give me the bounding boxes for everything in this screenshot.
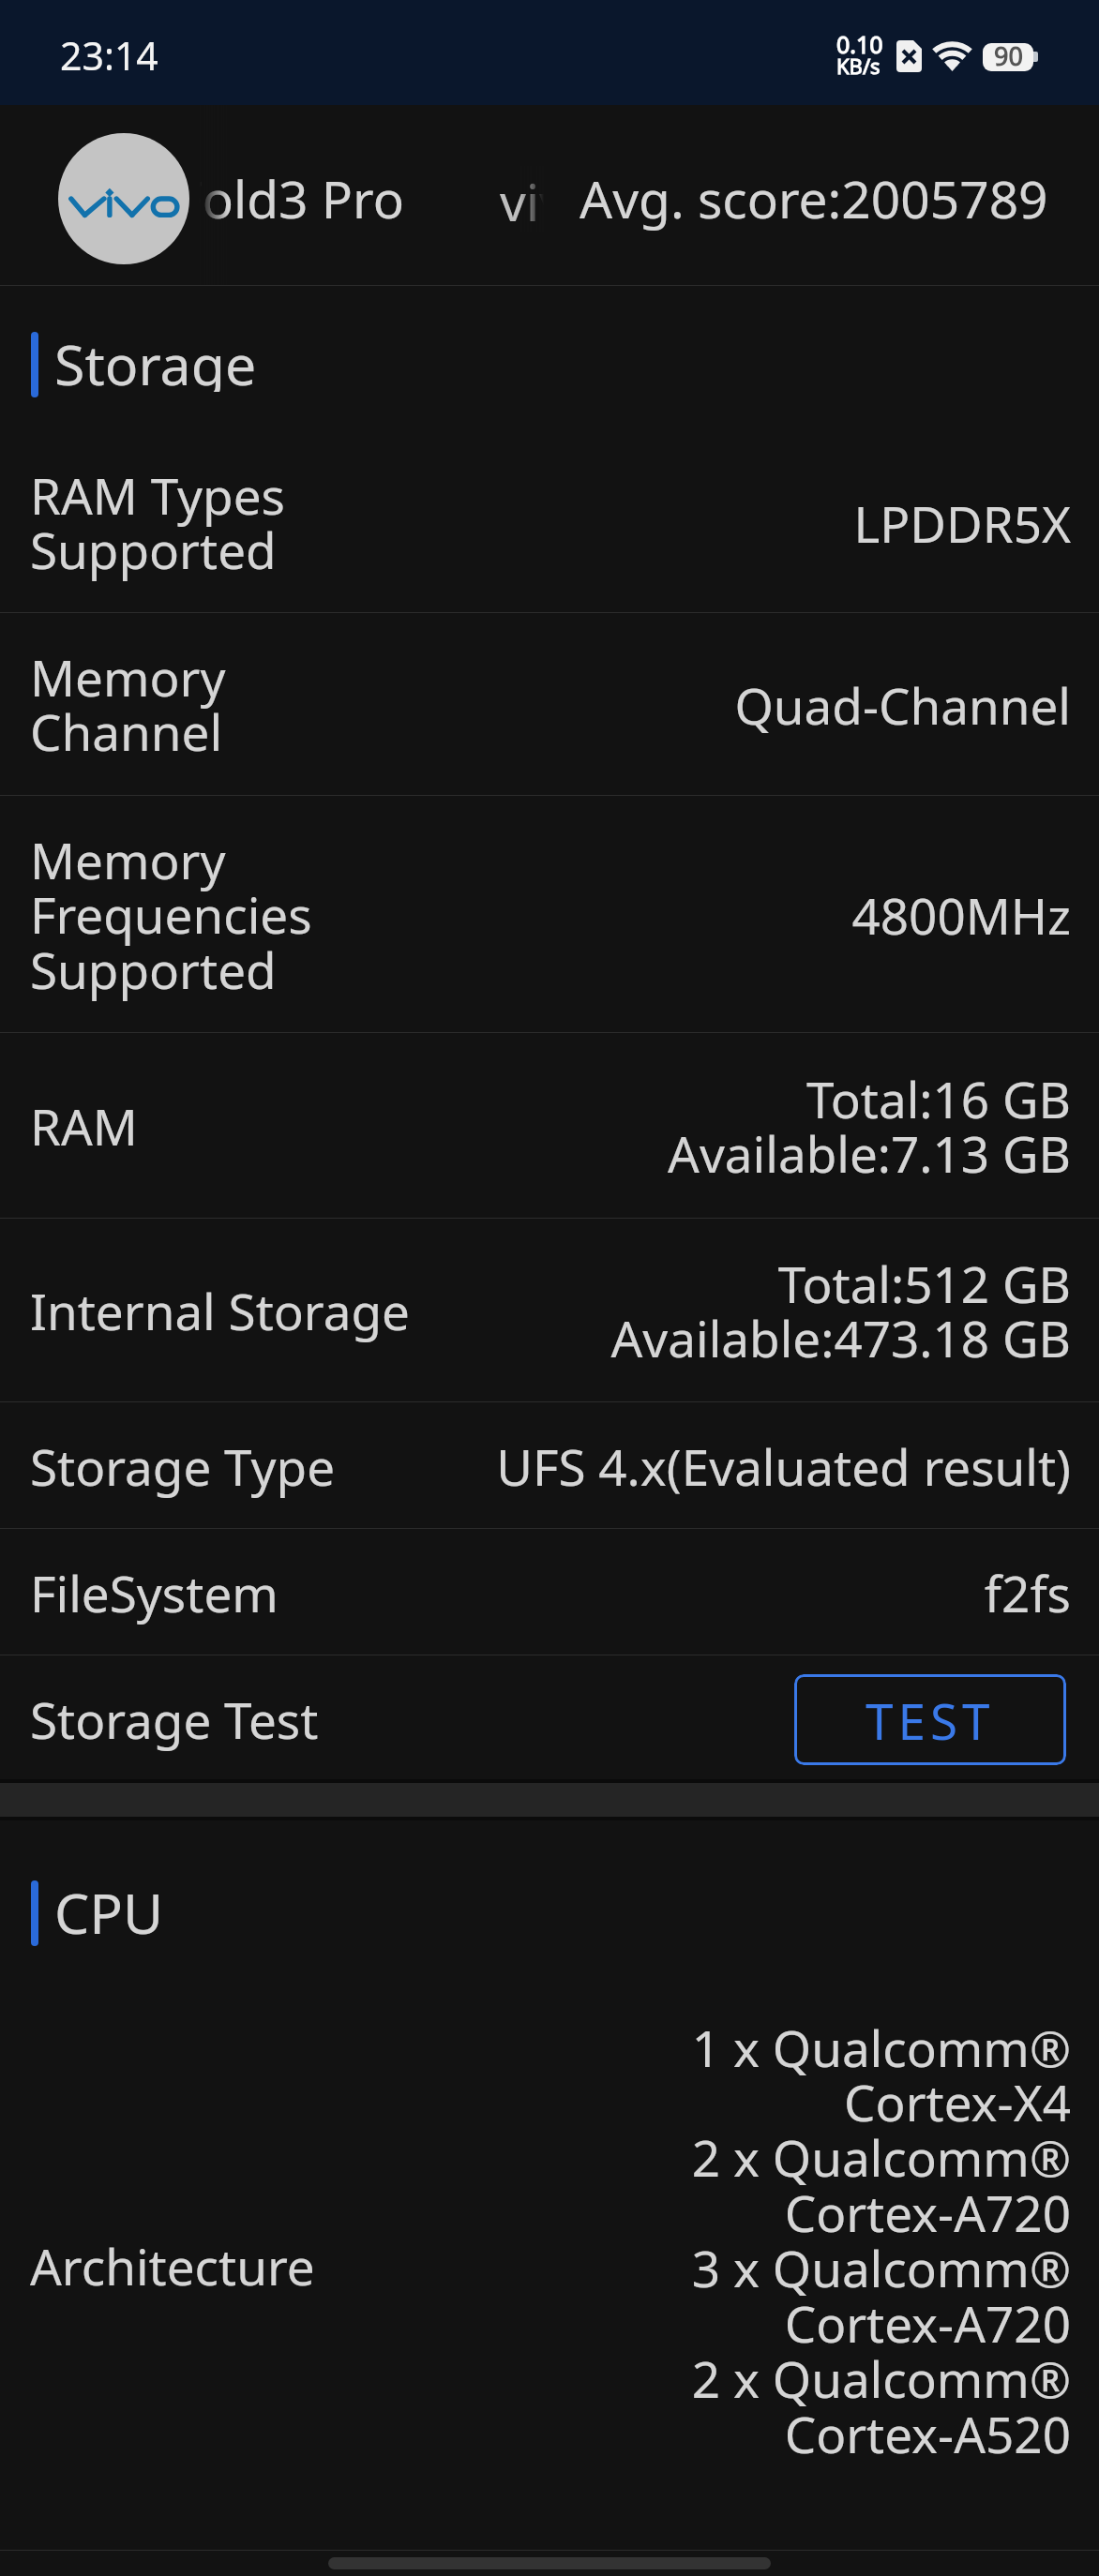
staticText: 4800MHz <box>851 881 1071 949</box>
button[interactable]: Memory Channel <box>0 613 1099 796</box>
staticText: vivo X Fold3 Pro <box>22 163 404 233</box>
button[interactable]: RAM Types Supported <box>0 432 1099 613</box>
staticText: Architecture <box>30 2232 315 2299</box>
staticText: Internal Storage <box>30 1277 410 1344</box>
button[interactable]: Memory Frequencies Supported <box>0 796 1099 1033</box>
staticText: 23:14 <box>60 29 158 82</box>
staticText: Storage <box>54 326 257 392</box>
button[interactable]: Architecture <box>0 1982 1099 2550</box>
staticText: 1 x Qualcomm® Cortex-X4 2 x Qualcomm® Co… <box>691 2014 1071 2468</box>
staticText: Total:16 GB Available:7.13 GB <box>668 1065 1071 1188</box>
staticText: Quad-Channel <box>734 671 1071 739</box>
staticText: 90 <box>994 38 1023 73</box>
staticText: FileSystem <box>30 1559 279 1626</box>
staticText: LPDDR5X <box>853 489 1071 557</box>
button[interactable]: TEST <box>794 1674 1066 1765</box>
staticText: UFS 4.x(Evaluated result) <box>496 1432 1071 1500</box>
staticText: Storage Test <box>30 1685 319 1753</box>
other: vivo <box>58 133 189 264</box>
staticText: Storage Type <box>30 1432 336 1500</box>
button[interactable]: Storage Type <box>0 1402 1099 1529</box>
staticText: Memory Channel <box>30 643 414 766</box>
staticText: Memory Frequencies Supported <box>30 826 414 1004</box>
staticText: Avg. score:2005789 <box>580 163 1048 233</box>
staticText: CPU <box>54 1875 164 1940</box>
other: Wi-Fi <box>933 41 971 71</box>
button[interactable]: Internal Storage <box>0 1219 1099 1402</box>
staticText: KB/s <box>836 52 881 80</box>
button[interactable]: FileSystem <box>0 1529 1099 1655</box>
staticText: 0.10 <box>836 28 883 60</box>
button[interactable]: RAM <box>0 1033 1099 1219</box>
other: No SIM card <box>896 40 922 72</box>
staticText: f2fs <box>984 1559 1071 1626</box>
staticText: TEST <box>866 1686 995 1754</box>
staticText: vivo <box>500 166 544 232</box>
staticText: RAM <box>30 1092 138 1160</box>
other: Home <box>328 2557 771 2569</box>
staticText: RAM Types Supported <box>30 461 414 584</box>
button[interactable]: vivo X Fold3 Pro <box>0 105 1099 286</box>
staticText: Total:512 GB Available:473.18 GB <box>610 1250 1071 1372</box>
